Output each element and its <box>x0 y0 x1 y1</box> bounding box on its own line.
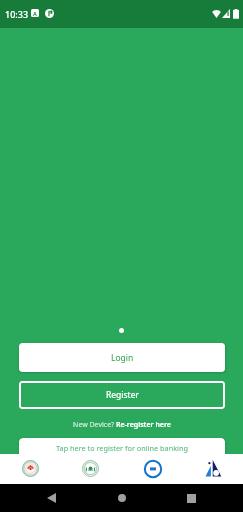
button[interactable]: Agriculture bank logo <box>81 459 99 477</box>
button[interactable]: Tap here to register for online banking <box>19 438 225 466</box>
button[interactable]: Recent apps <box>180 487 202 509</box>
staticText: Register <box>106 389 139 401</box>
button[interactable]: Home <box>111 487 133 509</box>
button[interactable]: Partner logo <box>142 458 163 479</box>
button[interactable]: Bank logo <box>21 459 39 477</box>
staticText: A <box>33 10 37 17</box>
button[interactable]: Login <box>19 343 225 372</box>
staticText: Login <box>111 352 134 364</box>
staticText: Tap here to register for online banking <box>19 443 225 453</box>
button[interactable]: Register <box>19 381 225 409</box>
staticText: New Device? Re-register here <box>73 420 171 430</box>
button[interactable]: App logo <box>203 458 223 478</box>
staticText: 10:33 <box>5 8 29 20</box>
button[interactable]: Back <box>40 487 62 509</box>
button[interactable]: New Device? Re-register here <box>0 417 243 432</box>
